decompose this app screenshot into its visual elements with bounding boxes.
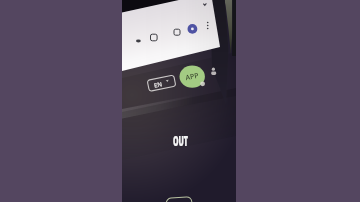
button[interactable]: Account: [186, 23, 199, 36]
button[interactable]: APP: [180, 69, 204, 85]
button[interactable]: Cast: [134, 36, 145, 46]
button[interactable]: Tab switcher: [171, 26, 183, 38]
button[interactable]: EN: [150, 79, 166, 91]
button[interactable]: More options: [203, 18, 213, 32]
button[interactable]: Extensions: [148, 31, 160, 43]
button[interactable]: Sign in: [208, 64, 219, 76]
staticText: APP: [184, 71, 200, 83]
staticText: EN: [153, 80, 163, 90]
button[interactable]: Collapse: [199, 0, 211, 9]
staticText: OUT: [173, 131, 188, 150]
